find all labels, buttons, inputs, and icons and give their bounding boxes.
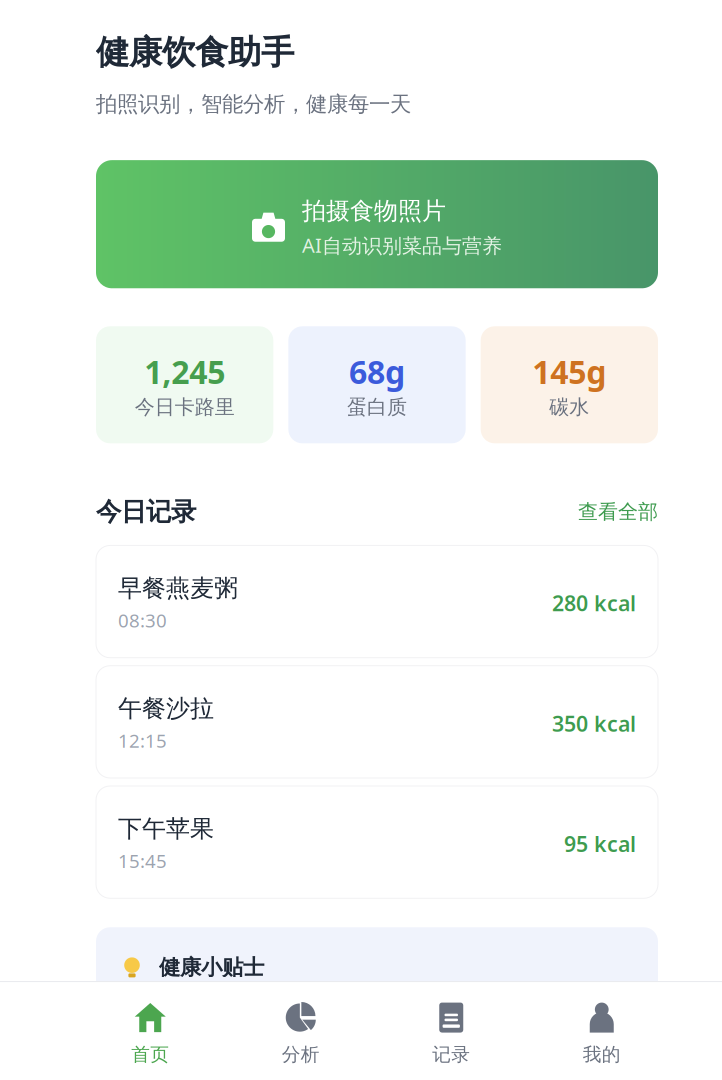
staticText: 我的 bbox=[583, 1043, 621, 1066]
button[interactable]: 记录 bbox=[376, 1002, 526, 1066]
staticText: 08:30 bbox=[118, 608, 167, 633]
staticText: AI自动识别菜品与营养 bbox=[302, 232, 502, 258]
staticText: 1,245 bbox=[144, 350, 225, 393]
button[interactable]: 我的 bbox=[526, 1002, 677, 1066]
staticText: 午餐沙拉 bbox=[118, 694, 214, 723]
staticText: 多吃蔬菜水果，保持均衡饮食 bbox=[122, 994, 382, 1019]
staticText: 下午苹果 bbox=[118, 814, 214, 843]
button[interactable]: 首页 bbox=[75, 1002, 225, 1066]
staticText: 查看全部 bbox=[578, 500, 658, 524]
staticText: 95 kcal bbox=[564, 829, 636, 858]
staticText: 记录 bbox=[432, 1043, 470, 1066]
button[interactable]: 早餐燕麦粥 bbox=[96, 545, 658, 658]
staticText: 蛋白质 bbox=[347, 395, 407, 419]
staticText: 15:45 bbox=[118, 848, 167, 873]
button[interactable]: 下午苹果 bbox=[96, 786, 658, 898]
staticText: 280 kcal bbox=[552, 589, 636, 617]
staticText: 68g bbox=[349, 350, 405, 393]
staticText: 健康小贴士 bbox=[159, 954, 264, 980]
staticText: 分析 bbox=[282, 1043, 320, 1066]
staticText: 145g bbox=[532, 350, 606, 393]
button[interactable]: 分析 bbox=[225, 1002, 376, 1066]
staticText: 拍摄食物照片 bbox=[302, 196, 446, 226]
button[interactable]: 拍摄食物照片 bbox=[96, 160, 658, 288]
button[interactable]: 午餐沙拉 bbox=[96, 666, 658, 778]
staticText: 350 kcal bbox=[552, 709, 636, 737]
staticText: 拍照识别，智能分析，健康每一天 bbox=[96, 91, 411, 117]
staticText: 今日记录 bbox=[96, 496, 196, 527]
staticText: 健康饮食助手 bbox=[96, 32, 294, 73]
staticText: 首页 bbox=[131, 1043, 169, 1066]
button[interactable]: 查看全部 bbox=[578, 500, 658, 524]
staticText: 12:15 bbox=[118, 728, 167, 753]
staticText: 今日卡路里 bbox=[135, 395, 235, 419]
staticText: 碳水 bbox=[549, 395, 589, 419]
staticText: 早餐燕麦粥 bbox=[118, 573, 238, 603]
